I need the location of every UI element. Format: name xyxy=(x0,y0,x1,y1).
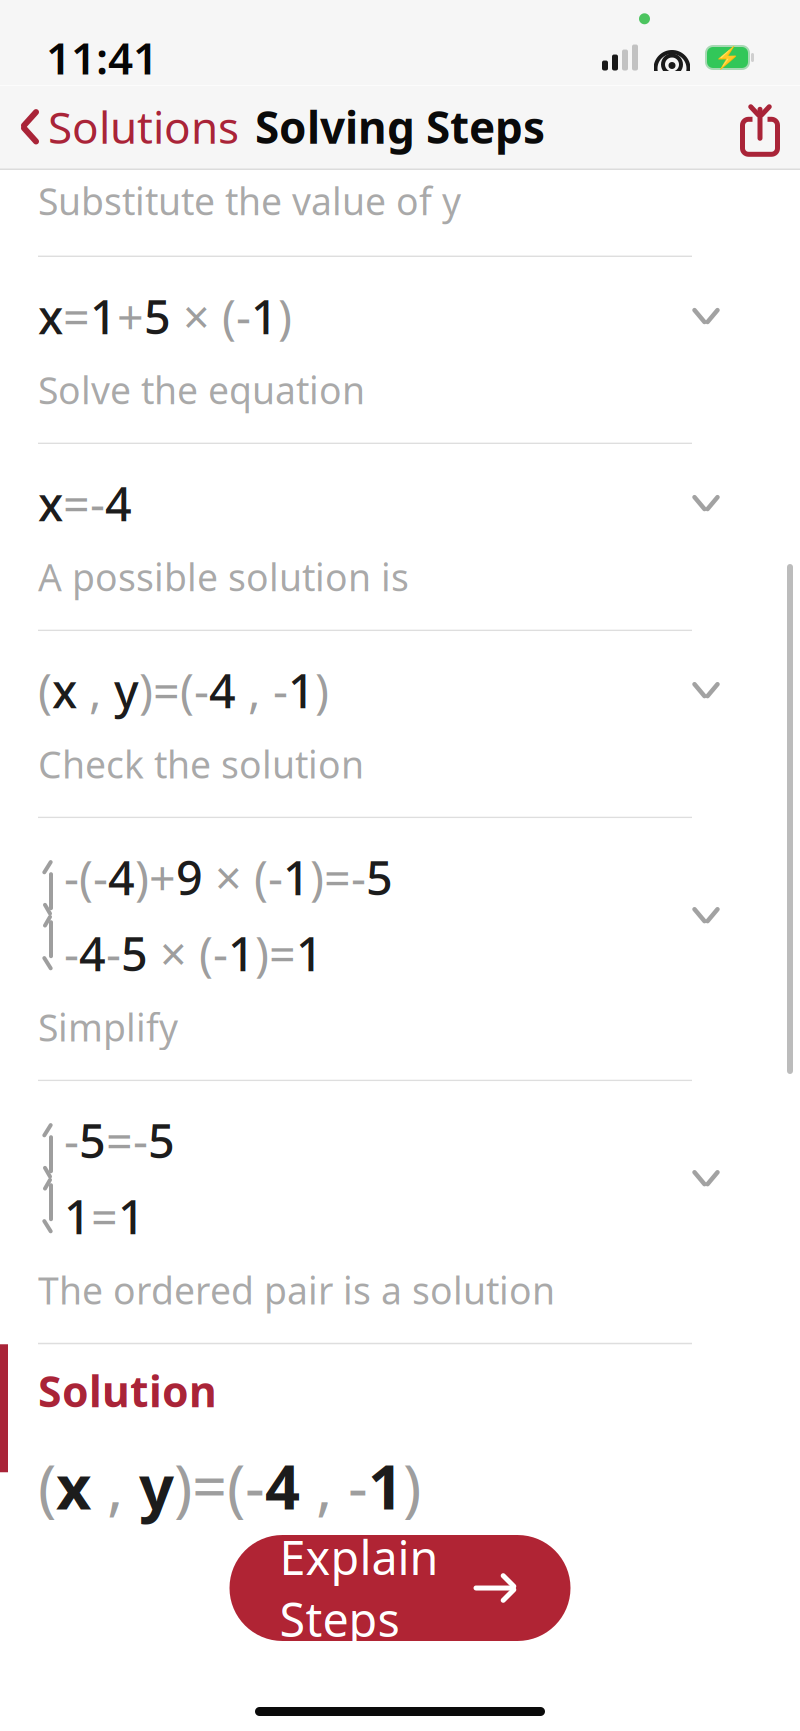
staticText: , xyxy=(91,1445,139,1526)
staticText: , xyxy=(77,659,114,721)
staticText: - xyxy=(273,659,288,721)
staticText: + xyxy=(117,285,144,347)
staticText: - xyxy=(213,922,228,984)
staticText: 11:41 xyxy=(46,28,158,87)
staticText: x xyxy=(56,1445,91,1526)
staticText: ) xyxy=(255,922,269,984)
staticText: y xyxy=(139,1445,174,1526)
staticText: 1 xyxy=(64,1185,91,1247)
staticText: Solving Steps xyxy=(255,98,545,156)
staticText: × xyxy=(148,922,199,984)
staticText: 1 xyxy=(296,922,323,984)
staticText: ( xyxy=(222,285,236,347)
staticText: = xyxy=(192,1445,227,1526)
staticText: - xyxy=(245,1445,265,1526)
staticText: Substitute the value of y xyxy=(38,176,461,226)
button[interactable]: - xyxy=(0,1081,800,1343)
staticText: ) xyxy=(278,285,292,347)
staticText: ( xyxy=(38,1445,56,1526)
staticText: 1 xyxy=(118,1185,145,1247)
button[interactable]: x xyxy=(0,444,800,630)
staticText: , xyxy=(236,659,273,721)
staticText: A possible solution is xyxy=(38,552,409,602)
staticText: ( xyxy=(180,659,194,721)
staticText: Simplify xyxy=(38,1002,178,1052)
staticText: 1 xyxy=(368,1445,403,1526)
staticText: 1 xyxy=(251,285,278,347)
staticText: 4 xyxy=(209,659,236,721)
staticText: = xyxy=(106,1109,133,1171)
staticText: × xyxy=(171,285,222,347)
staticText: = xyxy=(153,659,180,721)
staticText: 4 xyxy=(79,922,106,984)
staticText: - xyxy=(194,659,209,721)
staticText: 5 xyxy=(121,922,148,984)
staticText: 4 xyxy=(108,846,135,908)
staticText: 1 xyxy=(288,659,315,721)
staticText: The ordered pair is a solution xyxy=(38,1265,555,1315)
staticText: Solutions xyxy=(48,98,239,156)
staticText: Explain Steps xyxy=(279,1526,438,1650)
staticText: ( xyxy=(199,922,213,984)
staticText: 4 xyxy=(265,1445,300,1526)
staticText: 9 xyxy=(176,846,203,908)
staticText: - xyxy=(90,472,105,534)
button[interactable]: ( xyxy=(0,631,800,817)
staticText: 1 xyxy=(283,846,310,908)
staticText: ) xyxy=(139,659,153,721)
staticText: = xyxy=(63,285,90,347)
staticText: - xyxy=(348,1445,368,1526)
staticText: Solve the equation xyxy=(38,365,365,415)
staticText: x xyxy=(38,472,63,534)
staticText: - xyxy=(133,1109,148,1171)
staticText: ) xyxy=(403,1445,421,1526)
staticText: 5 xyxy=(366,846,393,908)
staticText: ( xyxy=(254,846,268,908)
staticText: - xyxy=(64,1109,79,1171)
staticText: ) xyxy=(135,846,149,908)
staticText: + xyxy=(149,846,176,908)
staticText: - xyxy=(64,922,79,984)
staticText: 1 xyxy=(90,285,117,347)
button[interactable]: Explain Steps xyxy=(229,1535,570,1641)
staticText: 5 xyxy=(79,1109,106,1171)
staticText: - xyxy=(64,846,79,908)
staticText: ( xyxy=(38,659,52,721)
button[interactable]: Share xyxy=(720,97,800,157)
staticText: - xyxy=(93,846,108,908)
button[interactable]: - xyxy=(0,818,800,1080)
staticText: ( xyxy=(79,846,93,908)
staticText: = xyxy=(324,846,351,908)
staticText: y xyxy=(114,659,139,721)
staticText: = xyxy=(269,922,296,984)
staticText: - xyxy=(268,846,283,908)
staticText: - xyxy=(106,922,121,984)
staticText: 4 xyxy=(105,472,132,534)
staticText: - xyxy=(236,285,251,347)
staticText: = xyxy=(63,472,90,534)
staticText: Solution xyxy=(38,1362,217,1419)
staticText: - xyxy=(351,846,366,908)
staticText: ) xyxy=(174,1445,192,1526)
staticText: 1 xyxy=(228,922,255,984)
staticText: x xyxy=(38,285,63,347)
staticText: x xyxy=(52,659,77,721)
staticText: , xyxy=(300,1445,348,1526)
staticText: ) xyxy=(310,846,324,908)
button[interactable]: Solutions xyxy=(0,88,253,166)
staticText: ⚡ xyxy=(714,45,741,70)
staticText: 5 xyxy=(144,285,171,347)
staticText: 5 xyxy=(148,1109,175,1171)
button[interactable]: x xyxy=(0,257,800,443)
staticText: Check the solution xyxy=(38,739,364,789)
staticText: ( xyxy=(227,1445,245,1526)
staticText: × xyxy=(203,846,254,908)
staticText: = xyxy=(91,1185,118,1247)
staticText: ) xyxy=(315,659,329,721)
